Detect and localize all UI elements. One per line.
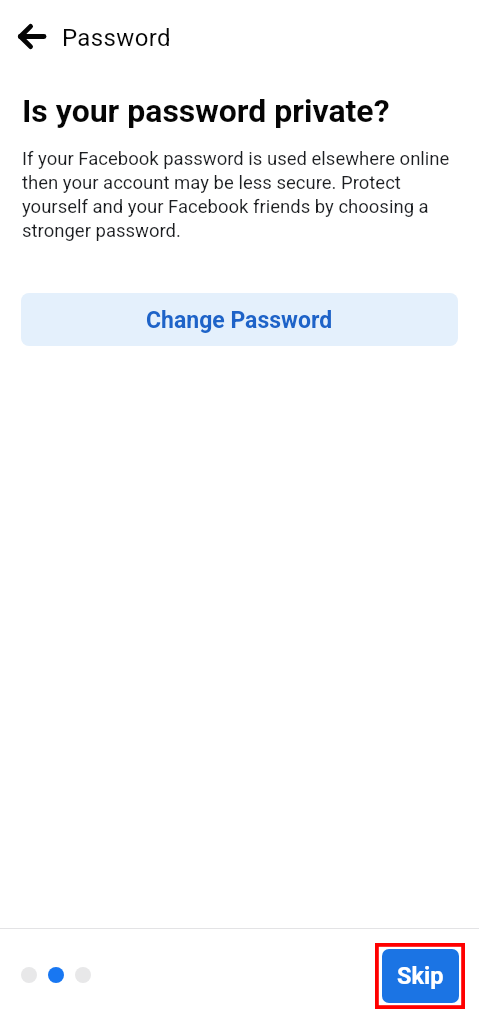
button[interactable]: Back — [10, 14, 54, 58]
staticText: Password — [62, 24, 171, 52]
staticText: Is your password private? — [22, 92, 390, 130]
staticText: Change Password — [146, 307, 333, 334]
staticText: Skip — [397, 962, 444, 990]
button[interactable]: Skip — [382, 949, 459, 1003]
staticText: If your Facebook password is used elsewh… — [22, 148, 458, 242]
button[interactable]: Change Password — [21, 293, 458, 346]
